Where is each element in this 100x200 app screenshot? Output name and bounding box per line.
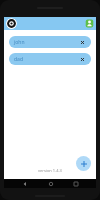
button[interactable]: Add [76,156,91,171]
staticText: dad [14,56,79,63]
button[interactable]: Remove john [79,39,86,46]
button[interactable]: Remove dad [79,56,86,63]
staticText: john [14,39,79,46]
staticText: version 1.4.3 [38,168,62,173]
button[interactable]: App logo [6,18,17,29]
button[interactable]: Recent apps [71,179,80,188]
button[interactable]: Home [46,179,55,188]
button[interactable]: Back [20,179,29,188]
button[interactable]: dad [9,53,91,65]
button[interactable]: john [9,36,91,48]
button[interactable]: Add contact [85,19,94,28]
